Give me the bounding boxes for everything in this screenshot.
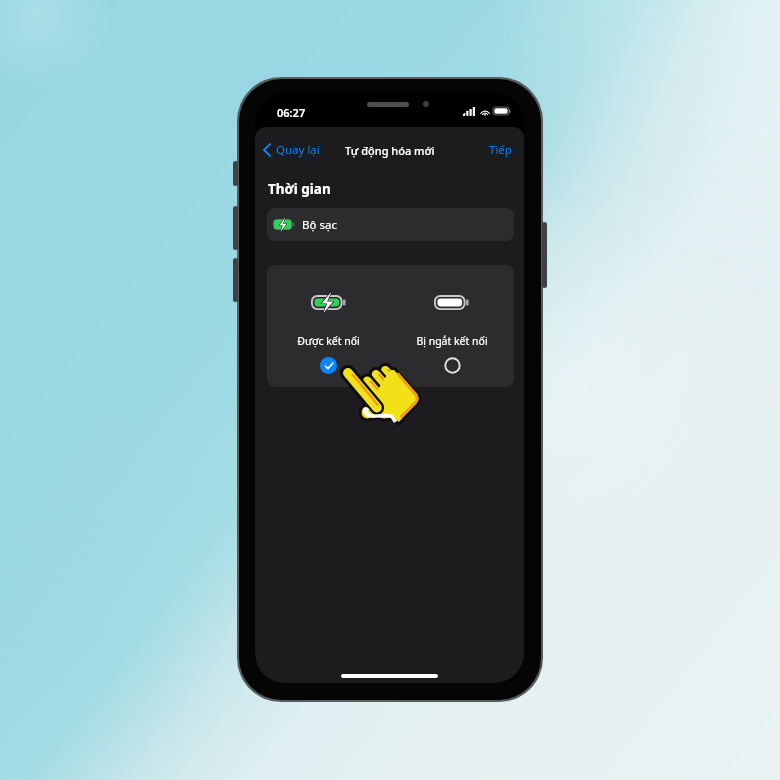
staticText: Bị ngắt kết nối — [416, 334, 488, 348]
staticText: Tự động hóa mới — [345, 143, 435, 158]
staticText: Bộ sạc — [302, 217, 337, 233]
staticText: Quay lại — [276, 142, 320, 158]
button[interactable]: Bị ngắt kết nối — [390, 265, 514, 387]
staticText: Thời gian — [268, 180, 331, 198]
other: Tap here — [343, 364, 424, 423]
staticText: Được kết nối — [297, 334, 360, 348]
button[interactable]: Bộ sạc — [267, 208, 514, 241]
staticText: 06:27 — [277, 105, 306, 120]
button[interactable]: Được kết nối — [267, 265, 390, 387]
button[interactable]: Quay lại — [255, 137, 326, 163]
button[interactable]: Tiếp — [481, 137, 524, 163]
